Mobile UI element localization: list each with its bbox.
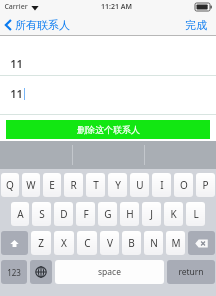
staticText: C (84, 236, 91, 250)
button[interactable]: R (64, 173, 83, 197)
staticText: N (150, 236, 158, 250)
staticText: Z (38, 236, 44, 250)
staticText: A (17, 207, 24, 221)
staticText: space (98, 266, 121, 278)
button[interactable]: L (186, 202, 205, 226)
staticText: O (180, 178, 188, 192)
staticText: F (83, 207, 89, 221)
button[interactable]: Y (108, 173, 127, 197)
button[interactable]: T (86, 173, 105, 197)
button[interactable]: 所有联系人 (5, 14, 74, 36)
staticText: R (70, 178, 77, 192)
staticText: K (170, 207, 177, 221)
staticText: 11:21 AM (101, 2, 132, 12)
button[interactable]: H (120, 202, 139, 226)
staticText: T (93, 178, 99, 192)
button[interactable]: J (142, 202, 161, 226)
button[interactable]: F (76, 202, 95, 226)
button[interactable]: space (55, 260, 164, 284)
button[interactable]: 123 (1, 260, 27, 284)
button[interactable]: M (166, 231, 185, 255)
staticText: Q (6, 178, 14, 192)
button[interactable]: 11 (0, 82, 216, 104)
staticText: X (61, 236, 67, 250)
button[interactable]: Shift (1, 231, 28, 255)
staticText: 123 (7, 267, 21, 278)
staticText: E (49, 178, 55, 192)
button[interactable]: C (77, 231, 97, 255)
staticText: 所有联系人 (15, 18, 70, 32)
button[interactable]: S (32, 202, 51, 226)
button[interactable]: G (98, 202, 117, 226)
staticText: Carrier (4, 2, 28, 12)
staticText: V (107, 236, 113, 250)
button[interactable]: E (43, 173, 61, 197)
staticText: D (60, 207, 68, 221)
button[interactable]: X (54, 231, 74, 255)
staticText: W (26, 178, 36, 192)
staticText: H (126, 207, 134, 221)
staticText: 删除这个联系人 (77, 124, 140, 135)
button[interactable]: B (122, 231, 141, 255)
button[interactable]: K (164, 202, 183, 226)
staticText: Y (115, 178, 121, 192)
button[interactable]: 11 (0, 52, 216, 74)
button[interactable]: 完成 (183, 14, 209, 36)
staticText: I (160, 178, 164, 192)
button[interactable]: Z (31, 231, 51, 255)
staticText: 完成 (185, 18, 207, 32)
staticText: M (171, 236, 181, 250)
staticText: G (104, 207, 112, 221)
button[interactable]: I (152, 173, 171, 197)
button[interactable]: return (167, 260, 215, 284)
staticText: 11 (10, 56, 23, 71)
staticText: return (178, 266, 204, 278)
staticText: U (136, 178, 144, 192)
button[interactable]: O (174, 173, 193, 197)
button[interactable]: A (11, 202, 29, 226)
button[interactable]: U (130, 173, 149, 197)
button[interactable]: Q (1, 173, 19, 197)
button[interactable]: Switch keyboard language (30, 260, 52, 284)
button[interactable]: N (144, 231, 163, 255)
staticText: S (39, 207, 45, 221)
button[interactable]: V (100, 231, 119, 255)
button[interactable]: W (22, 173, 40, 197)
staticText: P (202, 178, 209, 192)
staticText: 11 (10, 86, 23, 101)
button[interactable]: 删除这个联系人 (6, 120, 210, 139)
button[interactable]: Backspace (188, 231, 215, 255)
staticText: B (128, 236, 135, 250)
button[interactable]: D (54, 202, 73, 226)
button[interactable]: P (196, 173, 215, 197)
staticText: L (193, 207, 199, 221)
staticText: J (150, 207, 153, 221)
